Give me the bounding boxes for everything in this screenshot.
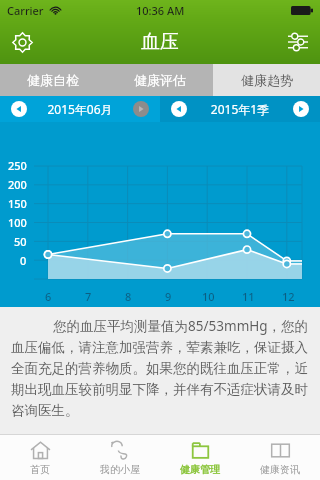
button[interactable]: 我的小屋 <box>80 435 160 480</box>
staticText: 0 <box>20 253 27 268</box>
staticText: 12 <box>282 289 295 304</box>
staticText: 7 <box>85 289 92 304</box>
button[interactable]: Filter options <box>276 20 320 64</box>
staticText: 2015年1季 <box>187 101 293 117</box>
button[interactable]: Settings <box>0 20 44 64</box>
staticText: 50 <box>14 234 27 249</box>
staticText: 10 <box>202 289 215 304</box>
button[interactable]: 健康管理 <box>160 435 240 480</box>
staticText: 200 <box>8 177 27 192</box>
staticText: 9 <box>165 289 172 304</box>
staticText: 10:36 AM <box>136 3 185 18</box>
button[interactable]: Previous quarter <box>171 101 187 117</box>
button[interactable]: 健康资讯 <box>240 435 320 480</box>
button[interactable]: Next quarter <box>293 101 309 117</box>
button[interactable]: Previous month <box>11 101 27 117</box>
staticText: 我的小屋 <box>100 463 140 476</box>
staticText: 健康管理 <box>180 463 220 476</box>
staticText: 2015年06月 <box>27 101 133 117</box>
button[interactable]: Next month <box>133 101 149 117</box>
staticText: 健康趋势 <box>241 72 293 88</box>
button[interactable]: 健康趋势 <box>213 64 320 96</box>
staticText: 健康资讯 <box>260 463 300 476</box>
staticText: 250 <box>8 158 27 173</box>
staticText: 血压 <box>141 30 179 54</box>
button[interactable]: 健康评估 <box>106 64 213 96</box>
staticText: 6 <box>45 289 52 304</box>
button[interactable]: 首页 <box>0 435 80 480</box>
staticText: 100 <box>8 215 27 230</box>
staticText: Carrier <box>7 3 44 18</box>
staticText: 首页 <box>30 463 50 476</box>
staticText: 健康评估 <box>134 72 186 88</box>
staticText: 11 <box>242 289 255 304</box>
staticText: 您的血压平均测量值为85/53mmHg，您的血压偏低，请注意加强营养，荤素兼吃，… <box>11 317 309 419</box>
staticText: 8 <box>125 289 132 304</box>
staticText: 健康自检 <box>27 72 79 88</box>
button[interactable]: 健康自检 <box>0 64 106 96</box>
staticText: 150 <box>8 196 27 211</box>
